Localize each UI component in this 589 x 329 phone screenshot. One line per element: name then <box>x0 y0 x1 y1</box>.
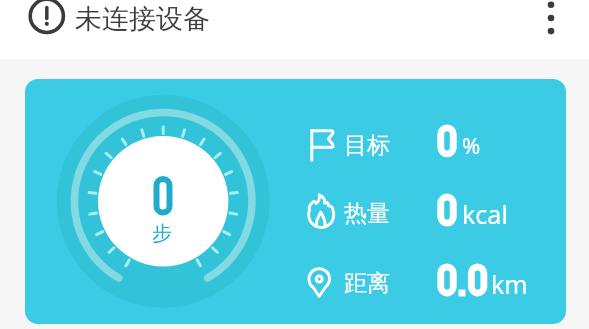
button[interactable]: 目标 <box>300 119 540 171</box>
button[interactable]: 步 <box>25 79 566 324</box>
staticText: kcal <box>462 197 508 231</box>
staticText: 未连接设备 <box>75 2 210 36</box>
staticText: 步 <box>152 221 172 246</box>
staticText: km <box>491 267 528 301</box>
staticText: 距离 <box>344 269 390 298</box>
button[interactable]: More options <box>534 0 568 40</box>
button[interactable]: 距离 <box>300 257 540 309</box>
staticText: 热量 <box>344 199 390 228</box>
staticText: 目标 <box>344 131 390 160</box>
staticText: % <box>462 130 481 160</box>
button[interactable]: 热量 <box>300 187 540 239</box>
